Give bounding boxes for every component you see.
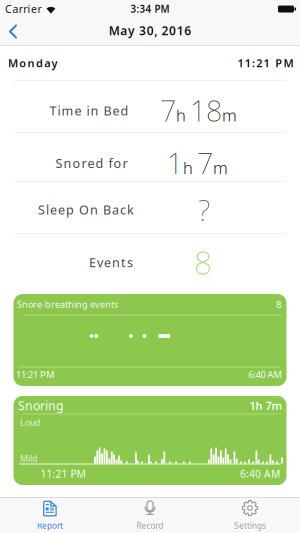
staticText: Mild xyxy=(20,452,37,464)
staticText: Events xyxy=(89,254,133,271)
staticText: Monday xyxy=(8,56,57,70)
staticText: Report xyxy=(37,520,63,531)
staticText: Snore-breathing events xyxy=(17,298,118,310)
staticText: Loud xyxy=(20,416,40,428)
button[interactable]: Report xyxy=(0,498,100,533)
staticText: Snored for xyxy=(55,155,127,171)
staticText: 8 xyxy=(194,241,212,283)
staticText: Snoring xyxy=(18,397,64,414)
staticText: 3:34 PM xyxy=(130,2,169,15)
staticText: Settings xyxy=(234,520,266,531)
staticText: 1h 7m xyxy=(249,398,282,413)
staticText: 1h 7m xyxy=(167,144,228,182)
staticText: Sleep On Back xyxy=(38,201,134,218)
staticText: Record xyxy=(136,520,163,531)
staticText: 8 xyxy=(276,298,281,311)
staticText: 11:21 PM xyxy=(40,467,85,480)
staticText: 6:40 AM xyxy=(240,467,280,480)
staticText: Time in Bed xyxy=(49,102,128,119)
staticText: 11:21 PM xyxy=(16,368,54,380)
staticText: 7h 18m xyxy=(160,91,237,129)
staticText: ? xyxy=(198,190,210,229)
staticText: 11:21 PM xyxy=(237,56,293,70)
button[interactable]: Record xyxy=(100,498,200,533)
staticText: 6:40 AM xyxy=(248,368,281,380)
button[interactable]: Settings xyxy=(200,498,300,533)
button[interactable]: Back xyxy=(0,16,20,45)
staticText: Carrier xyxy=(5,2,41,16)
staticText: May 30, 2016 xyxy=(109,22,191,38)
